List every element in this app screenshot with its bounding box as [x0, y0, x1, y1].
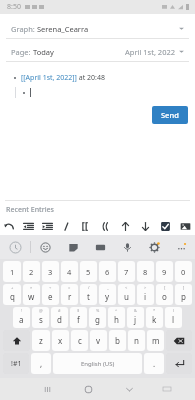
button[interactable]: 3 [42, 261, 59, 282]
button[interactable]: * [146, 307, 163, 328]
button[interactable]: & [127, 307, 144, 328]
button[interactable]: Move down [135, 218, 155, 235]
button[interactable]: 1 [3, 261, 21, 282]
staticText: a [19, 314, 24, 325]
button[interactable]: Backspace [166, 330, 192, 351]
button[interactable]: Send [152, 106, 188, 124]
staticText: Send [161, 110, 179, 120]
staticText: ÷ [49, 285, 52, 290]
staticText: = [68, 285, 71, 290]
staticText: y [105, 291, 110, 302]
staticText: Recent Entries [6, 205, 55, 215]
staticText: k [152, 314, 157, 325]
button[interactable]: 6 [99, 261, 116, 282]
button[interactable]: Page: [6, 42, 189, 61]
button[interactable]: b [109, 330, 126, 351]
staticText: _ [107, 285, 109, 290]
button[interactable]: More options [168, 235, 195, 259]
button[interactable]: Graph: [6, 19, 189, 38]
button[interactable]: m [147, 330, 164, 351]
button[interactable]: < [118, 284, 135, 305]
button[interactable]: Undo [0, 218, 19, 235]
button[interactable]: Outdent [19, 218, 38, 235]
staticText: ( [173, 308, 175, 313]
button[interactable]: 2 [23, 261, 40, 282]
button[interactable]: GIF [59, 235, 87, 259]
button[interactable]: Todo [155, 218, 175, 235]
staticText: $ [77, 308, 80, 313]
button[interactable]: Home [68, 378, 109, 400]
button[interactable]: Block ref [95, 218, 115, 235]
button[interactable]: Keyboard layout [150, 378, 183, 400]
button[interactable]: 5 [80, 261, 97, 282]
button[interactable]: 9 [156, 261, 173, 282]
button[interactable]: 4 [61, 261, 78, 282]
staticText: q [10, 291, 15, 302]
staticText: , [40, 358, 43, 369]
button[interactable]: Enter [166, 353, 192, 374]
staticText: u [124, 291, 129, 302]
button[interactable]: ^ [108, 307, 125, 328]
button[interactable]: v [90, 330, 107, 351]
button[interactable]: Samsung keyboard [0, 235, 30, 259]
button[interactable]: 8 [137, 261, 154, 282]
button[interactable]: Settings [141, 235, 168, 259]
button[interactable]: Symbols [3, 353, 29, 374]
button[interactable]: English (US) [53, 353, 142, 374]
button[interactable]: Hide keyboard [109, 378, 150, 400]
staticText: s [39, 314, 43, 325]
staticText: 8:50 [7, 2, 21, 12]
button[interactable]: [ [156, 284, 173, 305]
button[interactable]: + [3, 284, 21, 305]
button[interactable]: _ [99, 284, 116, 305]
button[interactable]: % [89, 307, 106, 328]
button[interactable]: Indent [38, 218, 57, 235]
button[interactable]: @ [32, 307, 49, 328]
button[interactable]: ! [13, 307, 30, 328]
staticText: % [96, 308, 100, 313]
button[interactable]: Stickers [31, 235, 59, 259]
button[interactable]: # [51, 307, 68, 328]
button[interactable]: z [32, 330, 50, 351]
staticText: 8 [143, 267, 148, 277]
button[interactable]: / [80, 284, 97, 305]
button[interactable]: Image [175, 218, 195, 235]
staticText: # [58, 308, 61, 313]
button[interactable]: Slash [57, 218, 76, 235]
button[interactable]: Move up [115, 218, 135, 235]
button[interactable]: Voice input [114, 235, 141, 259]
button[interactable]: ] [175, 284, 192, 305]
staticText: [ [164, 285, 166, 290]
button[interactable]: , [31, 353, 51, 374]
button[interactable]: Shift [3, 330, 30, 351]
staticText: f [77, 314, 80, 325]
button[interactable]: ( [165, 307, 182, 328]
staticText: p [181, 291, 186, 302]
staticText: b [115, 335, 120, 346]
staticText: < [125, 285, 128, 290]
button[interactable]: Recents [26, 378, 68, 400]
staticText: h [114, 314, 119, 325]
staticText: r [68, 291, 72, 302]
button[interactable]: = [61, 284, 78, 305]
button[interactable]: x [52, 330, 69, 351]
staticText: 2 [29, 267, 34, 277]
button[interactable]: ÷ [42, 284, 59, 305]
button[interactable]: $ [70, 307, 87, 328]
button[interactable]: Clipboard [87, 235, 114, 259]
staticText: 4 [67, 267, 72, 277]
button[interactable]: 7 [118, 261, 135, 282]
button[interactable]: × [23, 284, 40, 305]
staticText: ] [183, 285, 185, 290]
button[interactable]: 0 [175, 261, 192, 282]
staticText: 9 [162, 267, 167, 277]
button[interactable]: . [144, 353, 164, 374]
staticText: n [134, 335, 139, 346]
button[interactable]: > [137, 284, 154, 305]
button[interactable]: Page link [76, 218, 95, 235]
button[interactable]: c [71, 330, 88, 351]
button[interactable]: n [128, 330, 145, 351]
staticText: > [144, 285, 147, 290]
staticText: Today [33, 47, 54, 57]
staticText: Serena_Cearra [37, 24, 89, 34]
